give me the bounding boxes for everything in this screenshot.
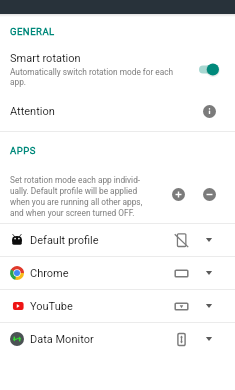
button[interactable]: Add app [172,188,185,201]
button[interactable]: Smart rotation toggle [199,63,219,76]
staticText: Attention [10,105,203,118]
staticText: GENERAL [10,26,55,37]
staticText: APPS [10,145,36,156]
button[interactable]: Data Monitor [0,323,235,355]
button[interactable]: Expand [202,332,216,346]
staticText: Data Monitor [30,333,94,346]
staticText: Default profile [30,234,99,247]
staticText: Smart rotation [10,52,81,65]
button[interactable]: Expand [202,266,216,280]
button[interactable]: YouTube [0,290,235,322]
staticText: Set rotation mode each app individ- uall… [10,175,143,218]
staticText: Automatically switch rotation mode for e… [10,67,174,87]
button[interactable]: Information [203,105,216,118]
button[interactable]: Smart rotation [0,44,235,91]
button[interactable]: Expand [202,299,216,313]
button[interactable]: Remove app [203,188,216,201]
button[interactable]: Default profile [0,224,235,256]
button[interactable]: Chrome [0,257,235,289]
button[interactable]: Attention [0,97,235,125]
button[interactable]: Expand [202,233,216,247]
staticText: YouTube [30,300,73,313]
staticText: Chrome [30,267,69,280]
